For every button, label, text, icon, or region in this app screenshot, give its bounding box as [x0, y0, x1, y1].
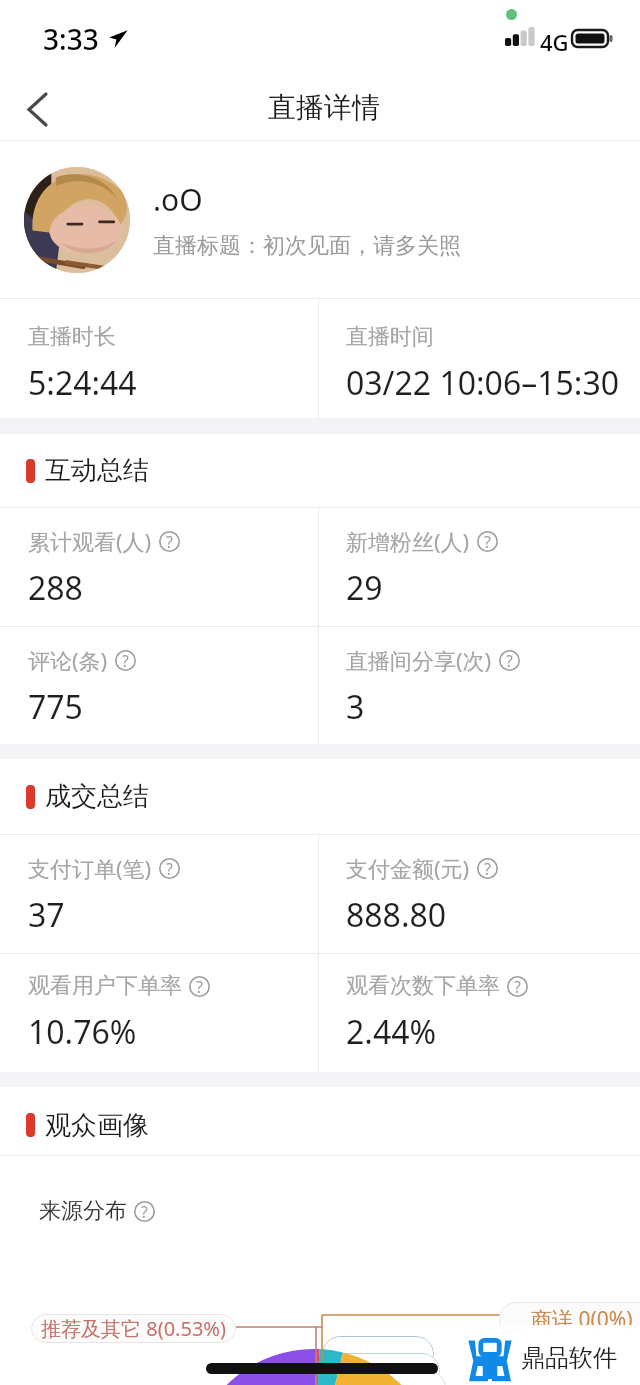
staticText: ?	[166, 531, 173, 552]
staticText: .oO	[153, 179, 203, 220]
staticText: ?	[196, 976, 203, 997]
staticText: 10.76%	[28, 1010, 137, 1054]
staticText: ?	[166, 858, 173, 879]
staticText: 直播详情	[268, 90, 380, 125]
staticText: 直播时长	[28, 323, 116, 351]
staticText: 支付订单(笔)	[28, 853, 152, 883]
staticText: 观看用户下单率	[28, 972, 182, 1000]
staticText: 775	[28, 685, 83, 729]
staticText: 288	[28, 566, 83, 610]
staticText: 888.80	[346, 893, 447, 937]
staticText: 观看次数下单率	[346, 972, 500, 1000]
staticText: 直播标题：初次见面，请多关照	[153, 232, 461, 260]
staticText: 37	[28, 893, 65, 937]
staticText: ?	[141, 1201, 148, 1222]
staticText: 2.44%	[346, 1010, 437, 1054]
staticText: 支付金额(元)	[346, 853, 470, 883]
staticText: 累计观看(人)	[28, 526, 152, 556]
staticText: 4G	[540, 27, 569, 57]
staticText: 直播时间	[346, 323, 434, 351]
staticText: 直播间分享(次)	[346, 645, 492, 675]
staticText: ?	[514, 976, 521, 997]
staticText: 推荐及其它 8(0.53%)	[41, 1315, 226, 1342]
staticText: 观众画像	[45, 1109, 149, 1142]
staticText: 03/22 10:06–15:30	[346, 361, 620, 405]
staticText: ?	[484, 531, 491, 552]
button[interactable]: Back	[0, 78, 74, 140]
staticText: ?	[506, 650, 513, 671]
staticText: 评论(条)	[28, 645, 108, 675]
staticText: 互动总结	[45, 454, 149, 487]
staticText: 新增粉丝(人)	[346, 526, 470, 556]
staticText: 29	[346, 566, 383, 610]
staticText: 来源分布	[39, 1197, 127, 1225]
staticText: ?	[484, 858, 491, 879]
staticText: 鼎品软件	[521, 1343, 617, 1373]
staticText: ?	[122, 650, 129, 671]
staticText: 3:33	[43, 20, 99, 58]
staticText: 5:24:44	[28, 361, 137, 405]
staticText: 3	[346, 685, 365, 729]
staticText: 成交总结	[45, 780, 149, 813]
staticText: 商详 0(0%)	[531, 1305, 633, 1334]
